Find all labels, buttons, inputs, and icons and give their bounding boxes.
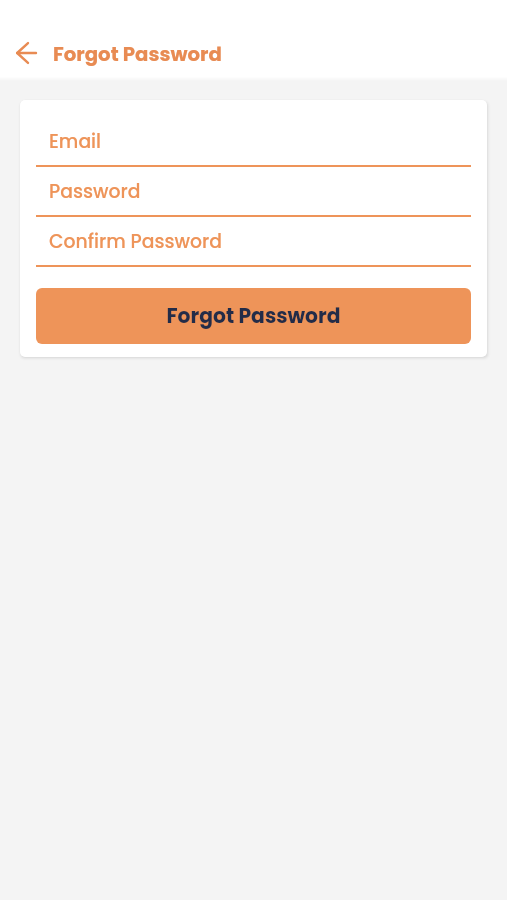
button[interactable]: Password [36,167,471,217]
staticText: Confirm Password [49,228,223,254]
staticText: Forgot Password [166,302,341,330]
staticText: Password [49,178,141,204]
button[interactable]: Forgot Password [36,288,471,344]
staticText: Forgot Password [53,40,222,68]
button[interactable]: Back [5,32,49,76]
button[interactable]: Confirm Password [36,217,471,267]
button[interactable]: Email [36,117,471,167]
staticText: Email [49,128,102,154]
